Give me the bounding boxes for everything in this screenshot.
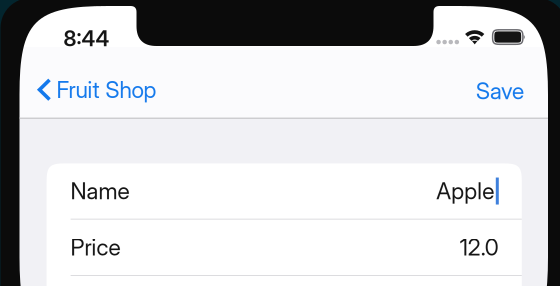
staticText: Fruit Shop (56, 76, 156, 103)
button[interactable]: Fruit Shop (19, 68, 166, 111)
staticText: Price (71, 234, 121, 261)
staticText: Apple (436, 177, 494, 205)
staticText: Name (71, 177, 130, 205)
staticText: 12.0 (460, 234, 499, 261)
button[interactable]: Name (47, 163, 522, 219)
button[interactable]: Save (463, 67, 537, 115)
button[interactable]: Price (47, 220, 522, 275)
staticText: Save (476, 77, 524, 105)
staticText: 8:44 (63, 26, 109, 51)
